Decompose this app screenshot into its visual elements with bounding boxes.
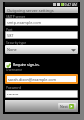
button[interactable]: 587 <box>6 32 77 38</box>
staticText: sarah.dixon@example.com <box>8 77 57 82</box>
button[interactable]: sarah.dixon@example.com <box>7 76 76 82</box>
staticText: Next <box>60 104 68 109</box>
button[interactable]: Require sign-in. <box>5 61 77 68</box>
staticText: •••••••• <box>7 92 19 97</box>
staticText: Require sign-in. <box>13 62 40 67</box>
staticText: smtp.example.com <box>7 20 41 25</box>
staticText: Username <box>6 67 23 71</box>
staticText: 10:47 AM <box>63 3 77 7</box>
button[interactable]: Next <box>60 103 74 110</box>
button[interactable]: •••••••• <box>6 91 77 97</box>
staticText: SMTP server <box>6 14 26 18</box>
staticText: 587 <box>7 33 14 38</box>
button[interactable]: smtp.example.com <box>6 19 77 25</box>
staticText: Security type <box>6 40 26 44</box>
staticText: Port <box>6 27 13 31</box>
button[interactable]: None <box>5 45 78 54</box>
staticText: Outgoing server settings <box>7 8 54 13</box>
staticText: Password <box>6 85 21 89</box>
staticText: None <box>7 47 17 52</box>
